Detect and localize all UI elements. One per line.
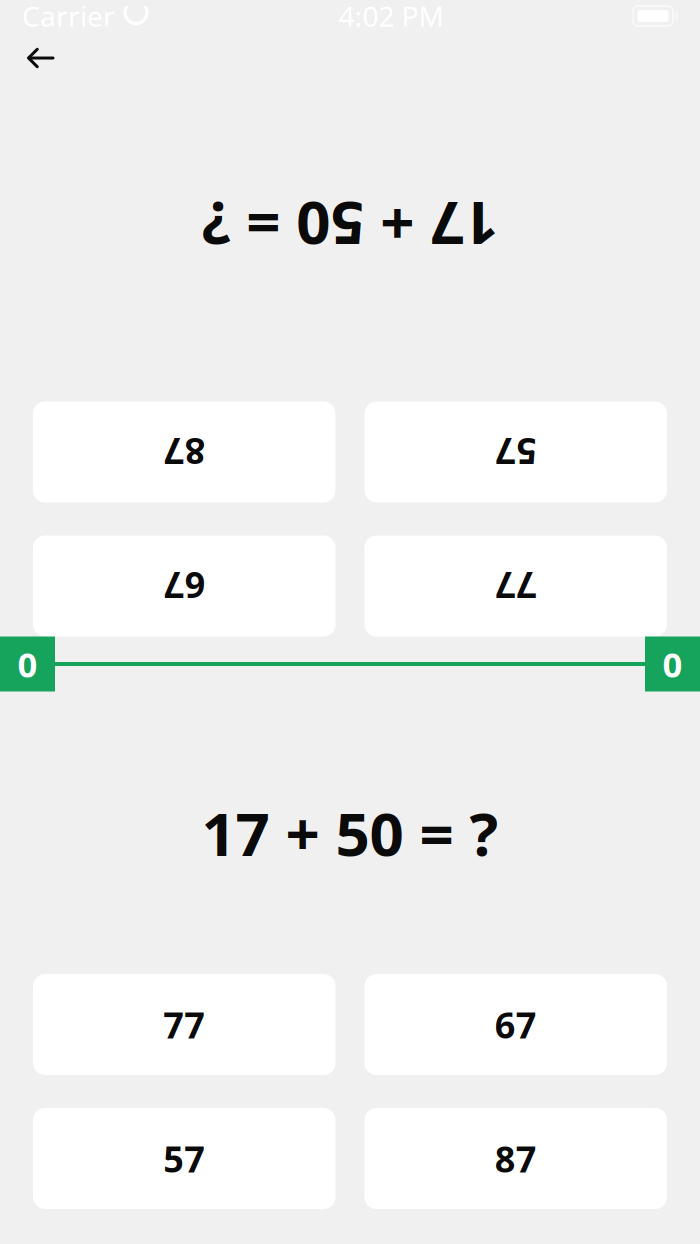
staticText: 17 + 50 = ? [201, 793, 498, 873]
staticText: 4:02 PM [338, 0, 443, 35]
staticText: 67 [495, 1001, 537, 1048]
staticText: 17 + 50 = ? [201, 455, 498, 535]
staticText: 57 [163, 1135, 205, 1182]
staticText: Carrier [22, 0, 115, 35]
button[interactable]: 87 [364, 1108, 667, 1209]
staticText: 87 [495, 1135, 537, 1182]
staticText: 0 [17, 641, 37, 687]
button[interactable]: 87 [364, 218, 667, 319]
button[interactable]: 57 [33, 218, 335, 319]
staticText: 0 [662, 641, 682, 687]
button[interactable]: Back [14, 32, 68, 84]
button[interactable]: 57 [33, 1108, 335, 1209]
button[interactable]: 67 [364, 974, 667, 1075]
button[interactable]: 77 [33, 974, 335, 1075]
staticText: 77 [163, 1001, 205, 1048]
